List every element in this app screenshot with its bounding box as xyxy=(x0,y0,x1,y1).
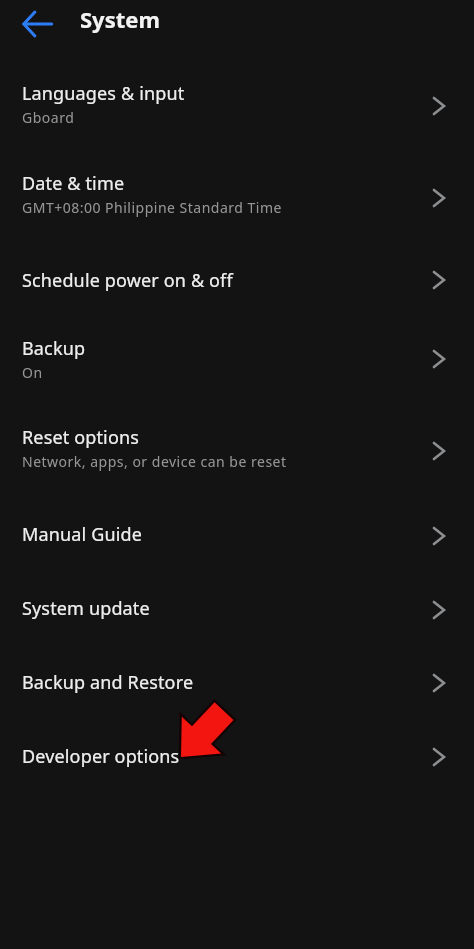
staticText: Gboard xyxy=(22,108,75,127)
button[interactable]: System update xyxy=(0,572,474,648)
staticText: Network, apps, or device can be reset xyxy=(22,452,287,471)
staticText: System xyxy=(80,4,160,34)
button[interactable] xyxy=(0,0,60,52)
staticText: Date & time xyxy=(22,171,125,196)
staticText: Schedule power on & off xyxy=(22,268,233,293)
staticText: Languages & input xyxy=(22,81,185,106)
staticText: System update xyxy=(22,596,150,621)
button[interactable]: Schedule power on & off xyxy=(0,244,474,316)
button[interactable]: Backup xyxy=(0,316,474,402)
button[interactable]: Reset options xyxy=(0,402,474,500)
staticText: On xyxy=(22,363,43,382)
staticText: Developer options xyxy=(22,744,180,769)
button[interactable]: Backup and Restore xyxy=(0,648,474,718)
button[interactable]: Developer options xyxy=(0,718,474,796)
staticText: GMT+08:00 Philippine Standard Time xyxy=(22,198,282,217)
button[interactable]: Date & time xyxy=(0,152,474,244)
staticText: Reset options xyxy=(22,425,139,450)
staticText: Manual Guide xyxy=(22,522,142,547)
button[interactable]: Languages & input xyxy=(0,60,474,152)
button[interactable]: Manual Guide xyxy=(0,500,474,572)
staticText: Backup xyxy=(22,336,86,361)
staticText: Backup and Restore xyxy=(22,670,194,695)
